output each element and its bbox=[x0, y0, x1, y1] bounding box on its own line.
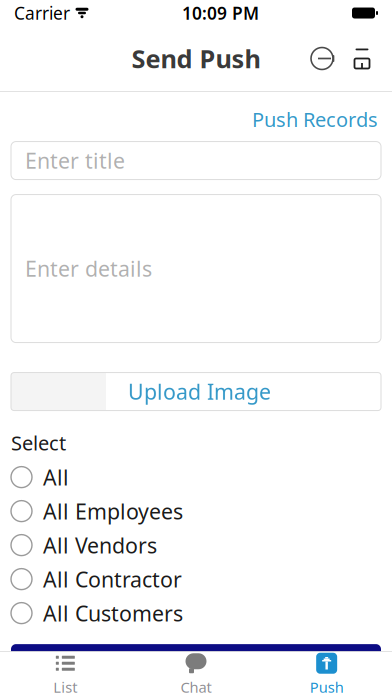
button[interactable]: Home bbox=[342, 38, 382, 78]
button[interactable]: Chat bbox=[131, 653, 261, 696]
button[interactable]: List bbox=[0, 653, 131, 696]
button[interactable]: All Employees bbox=[0, 494, 392, 528]
staticText: All bbox=[43, 463, 69, 491]
staticText: Push bbox=[310, 677, 344, 696]
button[interactable]: Enter details bbox=[11, 195, 381, 343]
staticText: Enter title bbox=[25, 146, 125, 175]
staticText: All Employees bbox=[43, 497, 183, 525]
button[interactable]: Push Records bbox=[240, 100, 390, 139]
staticText: SEND PUSH bbox=[136, 652, 256, 680]
button[interactable]: All Customers bbox=[0, 596, 392, 630]
staticText: Enter details bbox=[25, 254, 152, 283]
staticText: 10:09 PM bbox=[182, 1, 259, 24]
button[interactable]: All Vendors bbox=[0, 528, 392, 562]
button[interactable]: Log out bbox=[302, 38, 342, 78]
staticText: Carrier bbox=[14, 1, 70, 24]
button[interactable]: Upload Image bbox=[11, 373, 381, 411]
button[interactable]: SEND PUSH bbox=[11, 644, 381, 688]
staticText: List bbox=[53, 677, 77, 696]
staticText: Upload Image bbox=[128, 377, 271, 406]
staticText: Select bbox=[11, 430, 66, 456]
staticText: Chat bbox=[180, 677, 211, 696]
staticText: Push Records bbox=[252, 106, 378, 133]
button[interactable]: All bbox=[0, 460, 392, 494]
staticText: All Customers bbox=[43, 599, 183, 627]
button[interactable]: All Contractor bbox=[0, 562, 392, 596]
button[interactable]: Push bbox=[261, 653, 392, 696]
staticText: Send Push bbox=[131, 42, 260, 75]
staticText: All Vendors bbox=[43, 531, 157, 559]
staticText: All Contractor bbox=[43, 565, 182, 593]
button[interactable]: Enter title bbox=[11, 142, 381, 180]
